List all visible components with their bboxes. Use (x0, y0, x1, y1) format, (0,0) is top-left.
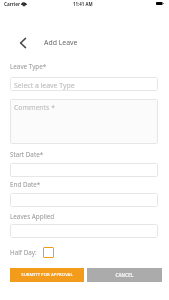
button[interactable]: Back (12, 32, 33, 53)
staticText: Carrier (4, 1, 20, 7)
button[interactable] (10, 163, 158, 177)
staticText: SUBMITT FOR APPROVAL (21, 272, 73, 278)
button[interactable]: Select a leave Type (10, 77, 158, 91)
staticText: Half Day: (10, 248, 37, 257)
button[interactable] (10, 193, 158, 207)
button[interactable] (10, 224, 158, 238)
staticText: Add Leave (44, 38, 78, 47)
staticText: Leave Type* (10, 62, 47, 71)
staticText: Comments * (14, 103, 55, 112)
button[interactable]: CANCEL (87, 268, 162, 282)
staticText: 11:41 AM (73, 1, 93, 7)
staticText: Start Date* (10, 150, 44, 159)
staticText: CANCEL (115, 272, 134, 278)
button[interactable]: Comments * (10, 99, 158, 144)
staticText: Select a leave Type (14, 81, 75, 90)
staticText: End Date* (10, 180, 41, 189)
button[interactable]: SUBMITT FOR APPROVAL (10, 268, 84, 282)
button[interactable]: Half Day checkbox (43, 247, 54, 258)
staticText: Leaves Applied (10, 212, 55, 221)
